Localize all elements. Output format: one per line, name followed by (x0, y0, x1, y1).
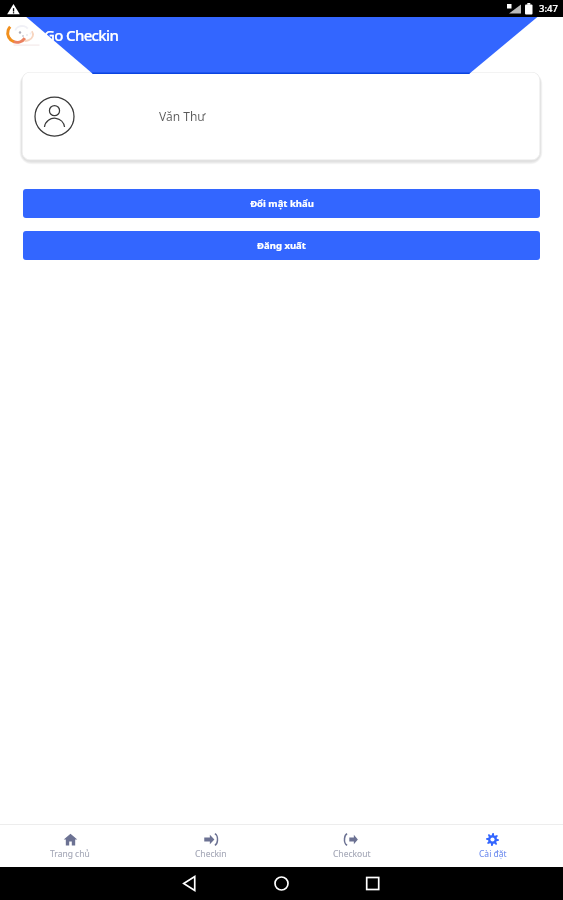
staticText: Đăng xuất (257, 239, 306, 252)
button[interactable]: Cài đặt (422, 833, 563, 860)
button[interactable]: Checkin (140, 833, 281, 860)
button[interactable]: Đăng xuất (23, 231, 540, 260)
staticText: Đổi mật khẩu (250, 197, 314, 210)
staticText: Cài đặt (479, 848, 507, 860)
staticText: Checkin (195, 848, 227, 860)
staticText: Go Checkin (44, 25, 119, 45)
staticText: 3:47 (539, 2, 558, 15)
button[interactable]: Đổi mật khẩu (23, 189, 540, 218)
staticText: Văn Thư (159, 108, 206, 124)
staticText: Checkout (333, 848, 371, 860)
button[interactable]: Trang chủ (0, 833, 140, 860)
button[interactable]: Checkout (281, 833, 422, 860)
button[interactable]: Văn Thư (22, 72, 540, 160)
staticText: Trang chủ (50, 848, 90, 860)
other: System navigation bar (0, 867, 563, 900)
